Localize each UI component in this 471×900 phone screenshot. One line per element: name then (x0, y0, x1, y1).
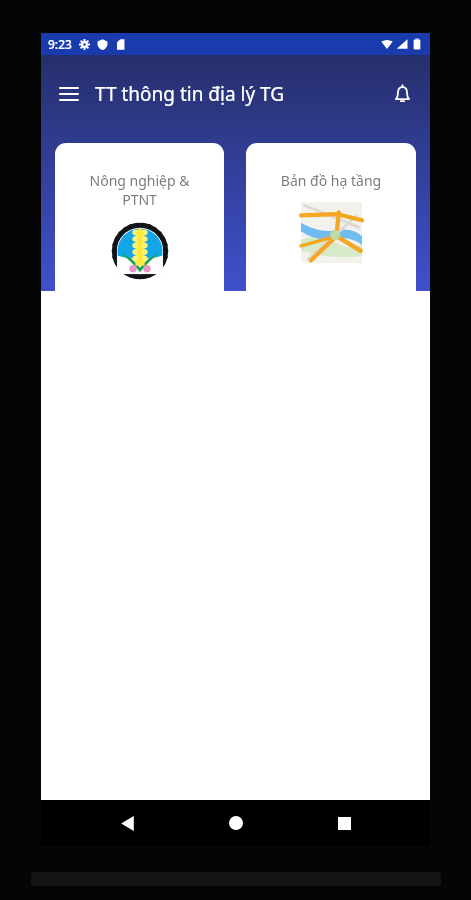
staticText: Bản đồ hạ tầng (252, 171, 410, 190)
staticText: TT thông tin địa lý TG (95, 81, 380, 107)
button[interactable]: Notifications (380, 72, 424, 116)
button[interactable]: Nông nghiệp & PTNT (55, 143, 224, 313)
button[interactable]: Menu (47, 72, 91, 116)
button[interactable]: Back (104, 800, 150, 846)
button[interactable]: Bản đồ hạ tầng (246, 143, 416, 313)
button[interactable]: Home (213, 800, 259, 846)
staticText: Nông nghiệp & PTNT (61, 171, 218, 209)
staticText: 9:23 (48, 36, 72, 52)
button[interactable]: Recent apps (321, 800, 367, 846)
